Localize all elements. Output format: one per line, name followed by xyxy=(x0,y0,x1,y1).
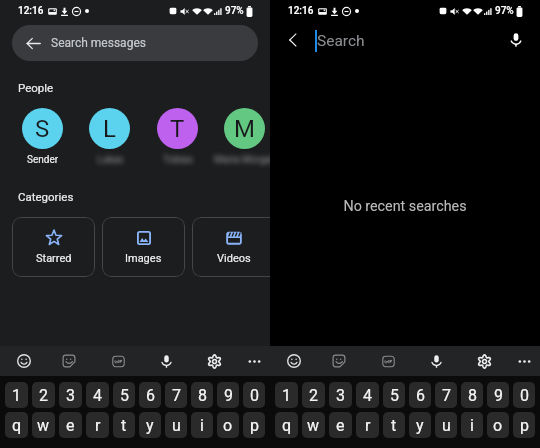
button[interactable]: S xyxy=(22,108,63,166)
button[interactable]: 5 xyxy=(113,382,135,408)
staticText: Lukas xyxy=(97,154,124,166)
button[interactable]: y xyxy=(139,412,161,438)
button[interactable]: 1 xyxy=(5,382,28,408)
staticText: 8 xyxy=(198,386,207,405)
button[interactable]: e xyxy=(59,412,82,438)
staticText: 97% xyxy=(495,5,514,17)
staticText: Sender xyxy=(27,154,59,166)
button[interactable]: p xyxy=(243,412,265,438)
staticText: People xyxy=(18,81,54,94)
button[interactable]: Sticker xyxy=(324,346,354,376)
button[interactable]: 6 xyxy=(409,382,431,408)
button[interactable]: Voice search xyxy=(508,32,524,48)
button[interactable]: GIF xyxy=(103,346,133,376)
button[interactable]: u xyxy=(435,412,457,438)
button[interactable]: Sticker xyxy=(54,346,84,376)
staticText: o xyxy=(223,416,233,435)
staticText: t xyxy=(391,416,397,435)
button[interactable]: o xyxy=(487,412,509,438)
button[interactable]: 8 xyxy=(191,382,213,408)
button[interactable]: T xyxy=(157,108,198,154)
button[interactable]: r xyxy=(86,412,109,438)
staticText: 6 xyxy=(146,386,155,405)
staticText: 7 xyxy=(172,386,181,405)
button[interactable]: 0 xyxy=(513,382,535,408)
staticText: i xyxy=(200,416,204,435)
staticText: 0 xyxy=(250,386,259,405)
staticText: o xyxy=(493,416,503,435)
staticText: 2 xyxy=(39,386,48,405)
staticText: No recent searches xyxy=(270,198,540,215)
button[interactable]: L xyxy=(89,108,130,154)
button[interactable]: w xyxy=(32,412,55,438)
staticText: 1 xyxy=(282,386,291,405)
button[interactable]: t xyxy=(113,412,135,438)
staticText: i xyxy=(470,416,474,435)
button[interactable]: 4 xyxy=(356,382,379,408)
button[interactable]: w xyxy=(302,412,325,438)
button[interactable]: Images xyxy=(102,217,185,277)
button[interactable]: 7 xyxy=(165,382,187,408)
button[interactable]: 6 xyxy=(139,382,161,408)
button[interactable]: u xyxy=(165,412,187,438)
button[interactable]: Voice input xyxy=(421,346,451,376)
staticText: y xyxy=(146,416,154,435)
button[interactable]: 3 xyxy=(59,382,82,408)
button[interactable]: Back xyxy=(12,25,258,61)
button[interactable]: q xyxy=(275,412,298,438)
staticText: 7 xyxy=(442,386,451,405)
button[interactable]: r xyxy=(356,412,379,438)
button[interactable]: 5 xyxy=(383,382,405,408)
button[interactable]: 1 xyxy=(275,382,298,408)
button[interactable]: e xyxy=(329,412,352,438)
button[interactable]: o xyxy=(217,412,239,438)
staticText: q xyxy=(12,416,22,435)
button[interactable]: 9 xyxy=(217,382,239,408)
staticText: 9 xyxy=(494,386,503,405)
button[interactable]: More options xyxy=(239,346,269,376)
button[interactable]: Emoji xyxy=(9,346,39,376)
staticText: L xyxy=(103,115,116,143)
staticText: p xyxy=(520,416,529,435)
button[interactable]: t xyxy=(383,412,405,438)
button[interactable]: i xyxy=(191,412,213,438)
button[interactable]: More options xyxy=(509,346,539,376)
button[interactable]: 2 xyxy=(32,382,55,408)
button[interactable]: 3 xyxy=(329,382,352,408)
staticText: r xyxy=(365,416,371,435)
staticText: M xyxy=(234,115,255,143)
button[interactable]: Starred xyxy=(12,217,95,277)
staticText: u xyxy=(172,416,181,435)
button[interactable]: Back xyxy=(285,32,301,48)
button[interactable]: 2 xyxy=(302,382,325,408)
staticText: 1 xyxy=(12,386,21,405)
staticText: u xyxy=(442,416,451,435)
staticText: T xyxy=(170,115,185,143)
button[interactable]: p xyxy=(513,412,535,438)
button[interactable]: GIF xyxy=(373,346,403,376)
button[interactable]: 0 xyxy=(243,382,265,408)
button[interactable]: q xyxy=(5,412,28,438)
staticText: 5 xyxy=(390,386,399,405)
staticText: 8 xyxy=(468,386,477,405)
staticText: Search xyxy=(317,32,365,50)
staticText: 4 xyxy=(363,386,372,405)
button[interactable]: Settings xyxy=(199,346,229,376)
button[interactable]: Settings xyxy=(469,346,499,376)
staticText: Videos xyxy=(217,252,251,265)
button[interactable]: y xyxy=(409,412,431,438)
button[interactable]: i xyxy=(461,412,483,438)
other: Back xyxy=(26,36,41,51)
button[interactable]: 4 xyxy=(86,382,109,408)
staticText: 0 xyxy=(520,386,529,405)
button[interactable]: 9 xyxy=(487,382,509,408)
button[interactable]: Emoji xyxy=(279,346,309,376)
staticText: e xyxy=(336,416,345,435)
button[interactable]: M xyxy=(224,108,265,154)
staticText: Images xyxy=(125,252,162,265)
button[interactable]: Voice input xyxy=(151,346,181,376)
button[interactable]: 8 xyxy=(461,382,483,408)
staticText: 3 xyxy=(336,386,345,405)
button[interactable]: 7 xyxy=(435,382,457,408)
button[interactable]: Videos xyxy=(192,217,287,277)
